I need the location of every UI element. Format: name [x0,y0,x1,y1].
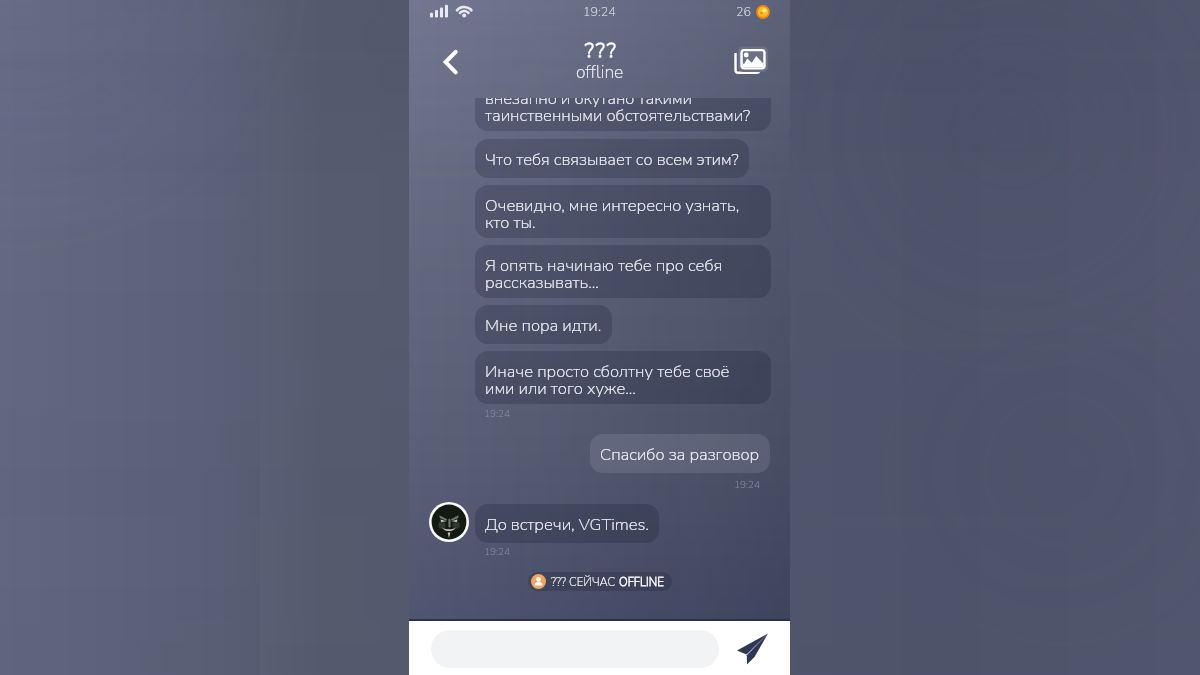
button[interactable]: Contact avatar [429,502,469,542]
button[interactable]: Back [434,44,470,80]
staticText: Я опять начинаю тебе про себя рассказыва… [485,254,723,294]
staticText: 19:24 [484,407,511,421]
button[interactable]: Что тебя связывает со всем этим? [475,139,749,178]
staticText: Мне пора идти. [485,314,602,337]
button[interactable]: Спасибо за разговор [590,434,770,473]
staticText: 19:24 [583,3,616,20]
staticText: 19:24 [734,478,761,492]
staticText: Иначе просто сболтну тебе своё ими или т… [485,360,730,400]
button[interactable]: внезапно и окутано такими таинственными … [475,98,771,131]
staticText: До встречи, VGTimes. [485,513,649,536]
staticText: ??? [585,36,619,64]
staticText: Что тебя связывает со всем этим? [485,148,739,171]
staticText: ??? СЕЙЧАС [551,574,619,590]
staticText: OFFLINE [619,574,664,590]
staticText: внезапно и окутано такими таинственными … [485,98,751,127]
staticText: Очевидно, мне интересно узнать, кто ты. [485,194,740,234]
staticText: offline [576,60,624,84]
button[interactable]: Я опять начинаю тебе про себя рассказыва… [475,245,771,298]
staticText: 19:24 [484,545,511,559]
button[interactable]: До встречи, VGTimes. [475,504,659,543]
button[interactable]: Очевидно, мне интересно узнать, кто ты. [475,185,771,238]
staticText: Спасибо за разговор [600,443,760,466]
button[interactable]: Photo gallery [734,43,770,79]
button[interactable]: Мне пора идти. [475,305,612,344]
button[interactable]: ??? СЕЙЧАС [528,572,672,591]
button[interactable]: Иначе просто сболтну тебе своё ими или т… [475,351,771,404]
button[interactable]: Send [736,632,770,666]
staticText: 26 [736,3,752,20]
